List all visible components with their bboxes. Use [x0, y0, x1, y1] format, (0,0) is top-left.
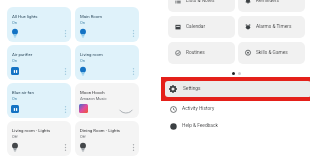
button[interactable]: Reminders	[238, 0, 305, 12]
staticText: Moon Hooch	[80, 90, 105, 95]
button[interactable]: Living room	[75, 45, 139, 80]
staticText: Dining Room - Lights	[80, 128, 121, 133]
button[interactable]: All Hue lights	[7, 7, 71, 42]
staticText: On	[12, 96, 17, 101]
button[interactable]: Main Room	[75, 7, 139, 42]
staticText: Living room	[80, 52, 103, 57]
staticText: Activity History	[182, 106, 215, 112]
staticText: Amazon Music	[80, 96, 107, 101]
button[interactable]: Routines	[168, 42, 235, 64]
button[interactable]: More options	[130, 67, 137, 76]
staticText: Living room - Lights	[12, 128, 51, 133]
staticText: On	[12, 58, 17, 63]
button[interactable]: Living room - Lights	[7, 121, 71, 156]
button[interactable]: Settings	[165, 81, 310, 97]
staticText: On	[80, 58, 85, 63]
staticText: Air purifier	[12, 52, 33, 57]
staticText: Reminders	[256, 0, 279, 4]
staticText: Calendar	[186, 24, 206, 30]
button[interactable]: Activity History	[170, 104, 300, 114]
staticText: Routines	[186, 50, 205, 56]
staticText: On	[12, 20, 17, 25]
button[interactable]: More options	[62, 143, 69, 152]
staticText: Main Room	[80, 14, 102, 19]
staticText: Off	[12, 134, 18, 139]
button[interactable]: Blue air fan	[7, 83, 71, 118]
button[interactable]: Moon Hooch	[75, 83, 139, 118]
staticText: Blue air fan	[12, 90, 34, 95]
button[interactable]: More options	[130, 29, 137, 38]
button[interactable]: Air purifier	[7, 45, 71, 80]
button[interactable]: Calendar	[168, 16, 235, 38]
staticText: Settings	[183, 86, 201, 92]
button[interactable]: Skills & Games	[238, 42, 305, 64]
staticText: Lists & Notes	[186, 0, 215, 4]
button[interactable]: Lists & Notes	[168, 0, 235, 12]
staticText: Help & Feedback	[182, 123, 218, 129]
staticText: Skills & Games	[256, 50, 288, 56]
button[interactable]: More options	[62, 29, 69, 38]
button[interactable]: Alarms & Timers	[238, 16, 305, 38]
button[interactable]: More options	[130, 143, 137, 152]
staticText: Alarms & Timers	[256, 24, 292, 30]
staticText: On	[80, 20, 85, 25]
button[interactable]: Dining Room - Lights	[75, 121, 139, 156]
staticText: Off	[80, 134, 86, 139]
button[interactable]: More options	[62, 105, 69, 114]
staticText: All Hue lights	[12, 14, 38, 19]
button[interactable]: Help & Feedback	[170, 121, 300, 131]
button[interactable]: More options	[62, 67, 69, 76]
